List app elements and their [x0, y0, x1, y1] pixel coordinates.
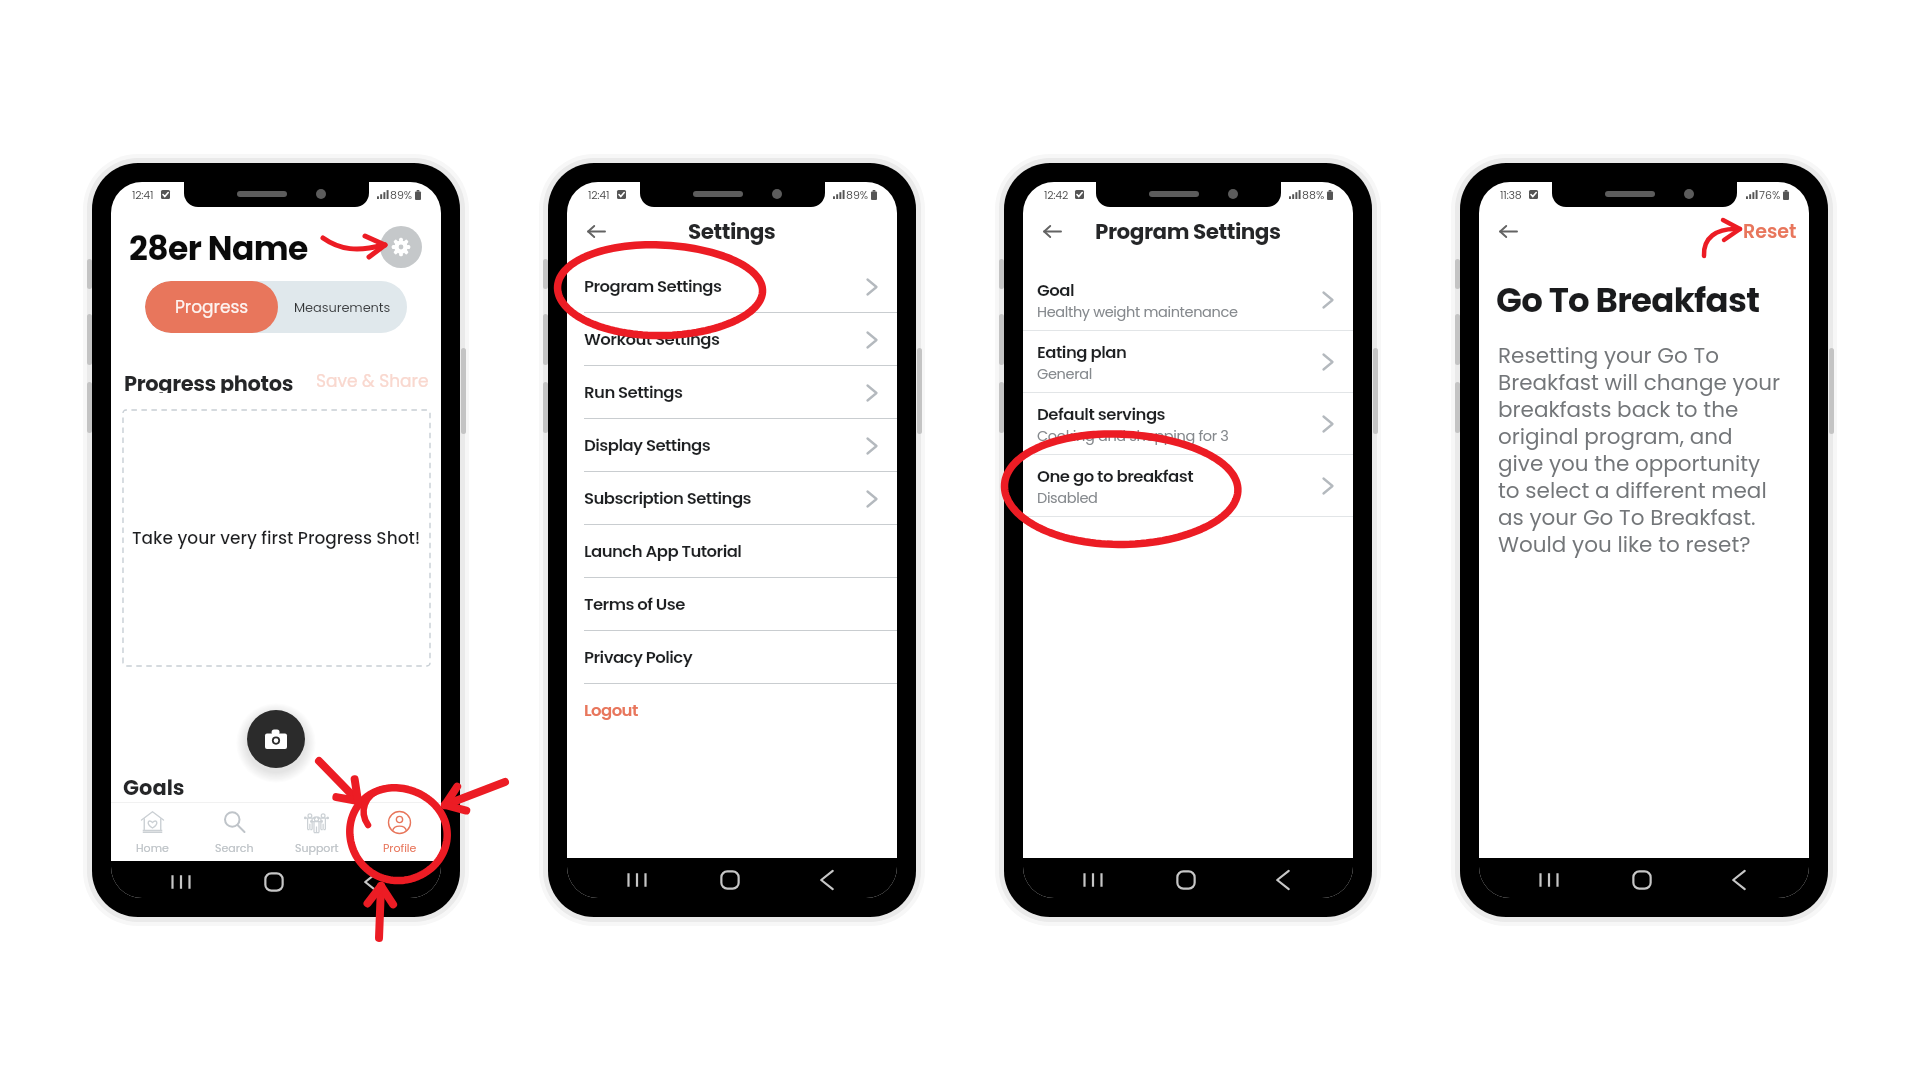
staticText: Default servings	[1037, 403, 1166, 426]
staticText: Eating plan	[1037, 341, 1127, 364]
staticText: 89%	[390, 187, 413, 202]
staticText: Run Settings	[584, 381, 683, 404]
button[interactable]: Default servings	[1023, 393, 1353, 455]
staticText: Program Settings	[584, 275, 722, 298]
staticText: One go to breakfast	[1037, 465, 1194, 488]
button[interactable]: Subscription Settings	[567, 472, 897, 525]
staticText: Program Settings	[1095, 216, 1281, 246]
button[interactable]: Launch App Tutorial	[567, 525, 897, 578]
button[interactable]: Back	[1270, 868, 1294, 892]
button[interactable]: Back	[358, 870, 382, 894]
button[interactable]: Home	[111, 803, 193, 861]
button[interactable]: Back	[1491, 214, 1525, 248]
staticText: Profile	[383, 840, 417, 855]
staticText: Save & Share	[316, 369, 429, 393]
button[interactable]: Recent apps	[1537, 868, 1561, 892]
button[interactable]: Search	[193, 803, 275, 861]
button[interactable]: Reset	[1743, 218, 1797, 245]
staticText: Goal	[1037, 279, 1074, 302]
staticText: Workout Settings	[584, 328, 720, 351]
button[interactable]: Display Settings	[567, 419, 897, 472]
button[interactable]: Recent apps	[625, 868, 649, 892]
button[interactable]: Recent apps	[1081, 868, 1105, 892]
button[interactable]: Back	[1035, 214, 1069, 248]
staticText: Disabled	[1037, 488, 1098, 508]
button[interactable]: Back	[1726, 868, 1750, 892]
staticText: 28er Name	[129, 225, 308, 269]
staticText: Display Settings	[584, 434, 711, 457]
button[interactable]: Support	[275, 803, 358, 861]
staticText: 76%	[1759, 187, 1781, 202]
staticText: Go To Breakfast	[1496, 276, 1760, 324]
staticText: 89%	[846, 187, 869, 202]
button[interactable]: One go to breakfast	[1023, 455, 1353, 517]
staticText: 12:41	[132, 187, 154, 202]
staticText: Terms of Use	[584, 593, 685, 616]
staticText: Support	[295, 840, 339, 855]
staticText: Progress photos	[124, 369, 293, 393]
button[interactable]: Settings	[380, 226, 422, 268]
button[interactable]: Eating plan	[1023, 331, 1353, 393]
button[interactable]: Program Settings	[567, 260, 897, 313]
button[interactable]: Home	[1630, 868, 1654, 892]
staticText: Reset	[1743, 218, 1797, 245]
staticText: General	[1037, 364, 1092, 384]
staticText: 11:38	[1500, 187, 1522, 202]
button[interactable]: Recent apps	[169, 870, 193, 894]
button[interactable]: Goal	[1023, 269, 1353, 331]
staticText: Take your very first Progress Shot!	[132, 526, 421, 550]
button[interactable]: Progress	[145, 281, 278, 333]
button[interactable]: Back	[579, 214, 613, 248]
button[interactable]: Workout Settings	[567, 313, 897, 366]
staticText: Launch App Tutorial	[584, 540, 742, 563]
staticText: 12:42	[1044, 187, 1068, 202]
button[interactable]: Run Settings	[567, 366, 897, 419]
staticText: Cooking and shopping for 3	[1037, 426, 1229, 446]
button[interactable]: Home	[1174, 868, 1198, 892]
button[interactable]: Home	[262, 870, 286, 894]
button[interactable]: Privacy Policy	[567, 631, 897, 684]
staticText: Progress	[175, 295, 249, 319]
button[interactable]: Terms of Use	[567, 578, 897, 631]
staticText: Home	[136, 840, 169, 855]
staticText: Search	[215, 840, 254, 855]
button[interactable]: Back	[814, 868, 838, 892]
staticText: Measurements	[294, 298, 391, 316]
staticText: Goals	[123, 773, 185, 802]
staticText: Healthy weight maintenance	[1037, 302, 1238, 322]
staticText: Subscription Settings	[584, 487, 752, 510]
staticText: Settings	[688, 216, 776, 246]
button[interactable]: Home	[718, 868, 742, 892]
button[interactable]: Logout	[567, 684, 897, 737]
button[interactable]: Save & Share	[316, 369, 429, 393]
staticText: Resetting your Go To Breakfast will chan…	[1498, 340, 1783, 560]
staticText: 88%	[1302, 187, 1325, 202]
button[interactable]: Take progress photo	[247, 710, 305, 768]
button[interactable]: Measurements	[278, 281, 407, 333]
staticText: Privacy Policy	[584, 646, 693, 669]
staticText: 12:41	[588, 187, 610, 202]
button[interactable]: Profile	[358, 803, 441, 861]
staticText: Logout	[584, 699, 638, 722]
